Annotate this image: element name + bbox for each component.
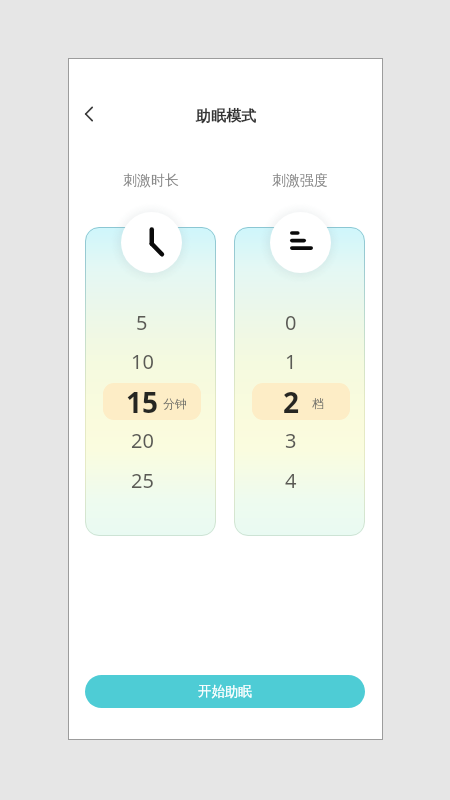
- button[interactable]: 25: [103, 462, 201, 499]
- staticText: 刺激强度: [272, 172, 328, 190]
- staticText: 档: [312, 396, 324, 411]
- staticText: 4: [285, 467, 297, 494]
- button[interactable]: 10: [103, 343, 201, 380]
- staticText: 10: [131, 348, 154, 375]
- staticText: 5: [136, 309, 148, 336]
- button[interactable]: 4: [252, 462, 350, 499]
- staticText: 开始助眠: [198, 683, 252, 700]
- button[interactable]: 1: [252, 343, 350, 380]
- staticText: 分钟: [163, 396, 187, 411]
- staticText: 2: [283, 383, 300, 420]
- staticText: 15: [126, 383, 159, 420]
- staticText: 3: [285, 427, 297, 454]
- button[interactable]: 0: [252, 304, 350, 341]
- staticText: 20: [131, 427, 154, 454]
- button[interactable]: Back: [66, 92, 110, 136]
- staticText: 刺激时长: [123, 172, 179, 190]
- button[interactable]: 5: [103, 304, 201, 341]
- button[interactable]: 3: [252, 422, 350, 459]
- button[interactable]: 15: [103, 383, 201, 420]
- staticText: 0: [285, 309, 297, 336]
- button[interactable]: 20: [103, 422, 201, 459]
- button[interactable]: 开始助眠: [85, 675, 365, 708]
- staticText: 助眠模式: [196, 107, 256, 126]
- button[interactable]: 2: [252, 383, 350, 420]
- staticText: 1: [285, 348, 297, 375]
- staticText: 25: [131, 467, 154, 494]
